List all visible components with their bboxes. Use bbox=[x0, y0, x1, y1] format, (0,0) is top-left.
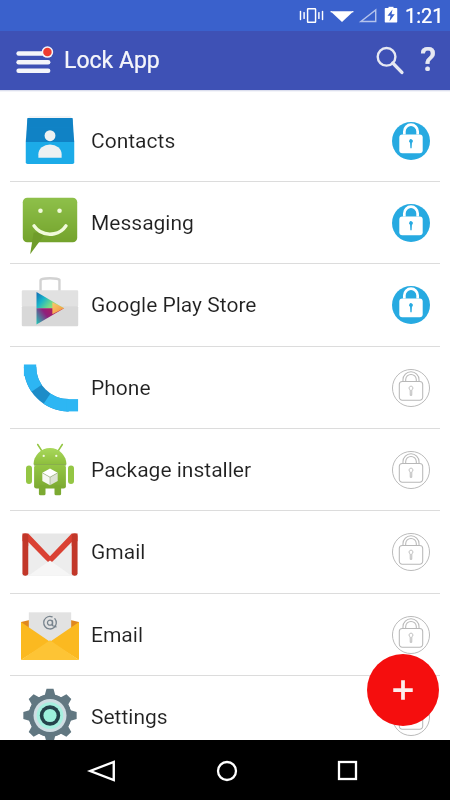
button[interactable]: Lock Settings bbox=[383, 689, 439, 745]
button[interactable]: Lock Phone bbox=[383, 360, 439, 416]
staticText: Package installer bbox=[91, 458, 252, 483]
button[interactable]: Messaging bbox=[0, 182, 450, 264]
button[interactable]: Unlock Messaging bbox=[383, 195, 439, 251]
button[interactable]: Gmail bbox=[0, 511, 450, 593]
staticText: 1:21 bbox=[405, 4, 444, 27]
staticText: Google Play Store bbox=[91, 293, 257, 318]
button[interactable]: Home bbox=[204, 748, 249, 793]
button[interactable]: Help bbox=[407, 39, 450, 82]
button[interactable]: Open navigation menu bbox=[11, 37, 59, 85]
staticText: Settings bbox=[91, 705, 168, 730]
button[interactable]: Recent apps bbox=[325, 748, 370, 793]
button[interactable]: Unlock Google Play Store bbox=[383, 277, 439, 333]
staticText: Gmail bbox=[91, 540, 146, 565]
staticText: ? bbox=[420, 40, 437, 79]
staticText: Messaging bbox=[91, 211, 194, 236]
button[interactable]: Lock Email bbox=[383, 607, 439, 663]
staticText: Email bbox=[91, 623, 143, 648]
button[interactable]: Search bbox=[366, 37, 414, 85]
staticText: Contacts bbox=[91, 129, 176, 154]
button[interactable]: Lock Package installer bbox=[383, 442, 439, 498]
button[interactable]: Google Play Store bbox=[0, 264, 450, 346]
button[interactable]: Email bbox=[0, 594, 450, 676]
button[interactable]: Package installer bbox=[0, 429, 450, 511]
button[interactable]: Settings bbox=[0, 676, 450, 758]
staticText: Phone bbox=[91, 376, 151, 401]
button[interactable]: Phone bbox=[0, 347, 450, 429]
button[interactable]: Add app bbox=[367, 654, 439, 726]
button[interactable]: Back bbox=[79, 748, 124, 793]
staticText: Lock App bbox=[64, 47, 160, 74]
button[interactable]: Unlock Contacts bbox=[383, 113, 439, 169]
button[interactable]: Contacts bbox=[0, 100, 450, 182]
button[interactable]: Lock Gmail bbox=[383, 524, 439, 580]
